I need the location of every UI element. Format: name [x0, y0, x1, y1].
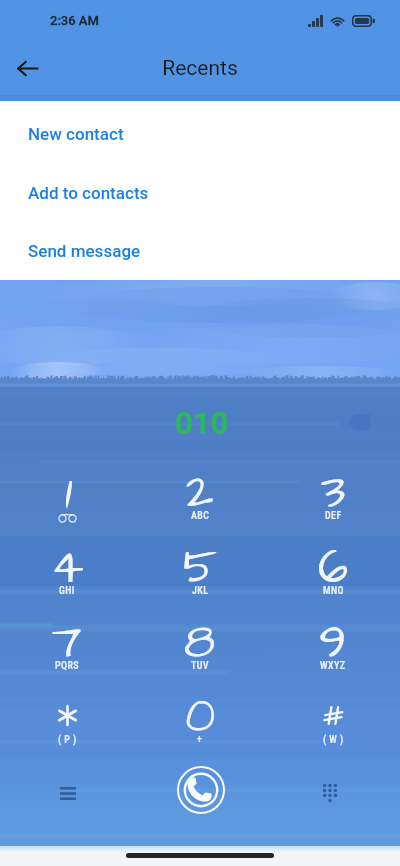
button[interactable]: Send message	[0, 222, 400, 280]
staticText: ( W )	[323, 734, 344, 746]
staticText: Recents	[27, 56, 373, 81]
staticText: ( P )	[58, 734, 77, 746]
staticText: GHI	[59, 585, 75, 597]
staticText: PQRS	[55, 660, 79, 672]
staticText: JKL	[192, 585, 209, 597]
staticText: 9	[319, 610, 347, 677]
button[interactable]: 4	[11, 531, 123, 605]
button[interactable]: Call	[176, 765, 226, 815]
button[interactable]: 0	[144, 680, 256, 754]
staticText: WXYZ	[320, 660, 346, 672]
staticText: 8	[184, 610, 216, 677]
staticText: New contact	[28, 124, 124, 144]
button[interactable]: 5	[144, 531, 256, 605]
staticText: +	[197, 734, 203, 746]
button[interactable]: 2	[144, 456, 256, 530]
staticText: 3	[321, 460, 346, 527]
button[interactable]: 9	[277, 606, 389, 680]
button[interactable]	[11, 456, 123, 530]
staticText: MNO	[323, 585, 344, 597]
button[interactable]: 3	[277, 456, 389, 530]
staticText: 2:36 AM	[50, 13, 99, 28]
staticText: 5	[183, 535, 217, 602]
button[interactable]: Back	[0, 41, 54, 95]
staticText: DEF	[325, 510, 342, 522]
staticText: 6	[318, 535, 349, 602]
staticText: 010	[175, 405, 229, 441]
staticText: 4	[51, 535, 84, 602]
button[interactable]: 7	[11, 606, 123, 680]
staticText: Add to contacts	[28, 183, 149, 203]
button[interactable]: Call log	[46, 771, 90, 815]
button[interactable]: ( P )	[11, 680, 123, 754]
button[interactable]: ( W )	[277, 680, 389, 754]
staticText: 0	[185, 684, 216, 751]
button[interactable]: 6	[277, 531, 389, 605]
button[interactable]: Add to contacts	[0, 163, 400, 222]
staticText: ABC	[191, 510, 210, 522]
button[interactable]: Dialpad	[308, 771, 352, 815]
staticText: 2	[186, 460, 214, 527]
staticText: TUV	[191, 660, 209, 672]
button[interactable]: 8	[144, 606, 256, 680]
staticText: Send message	[28, 241, 141, 261]
button[interactable]: New contact	[0, 104, 400, 163]
staticText: 7	[52, 610, 82, 677]
